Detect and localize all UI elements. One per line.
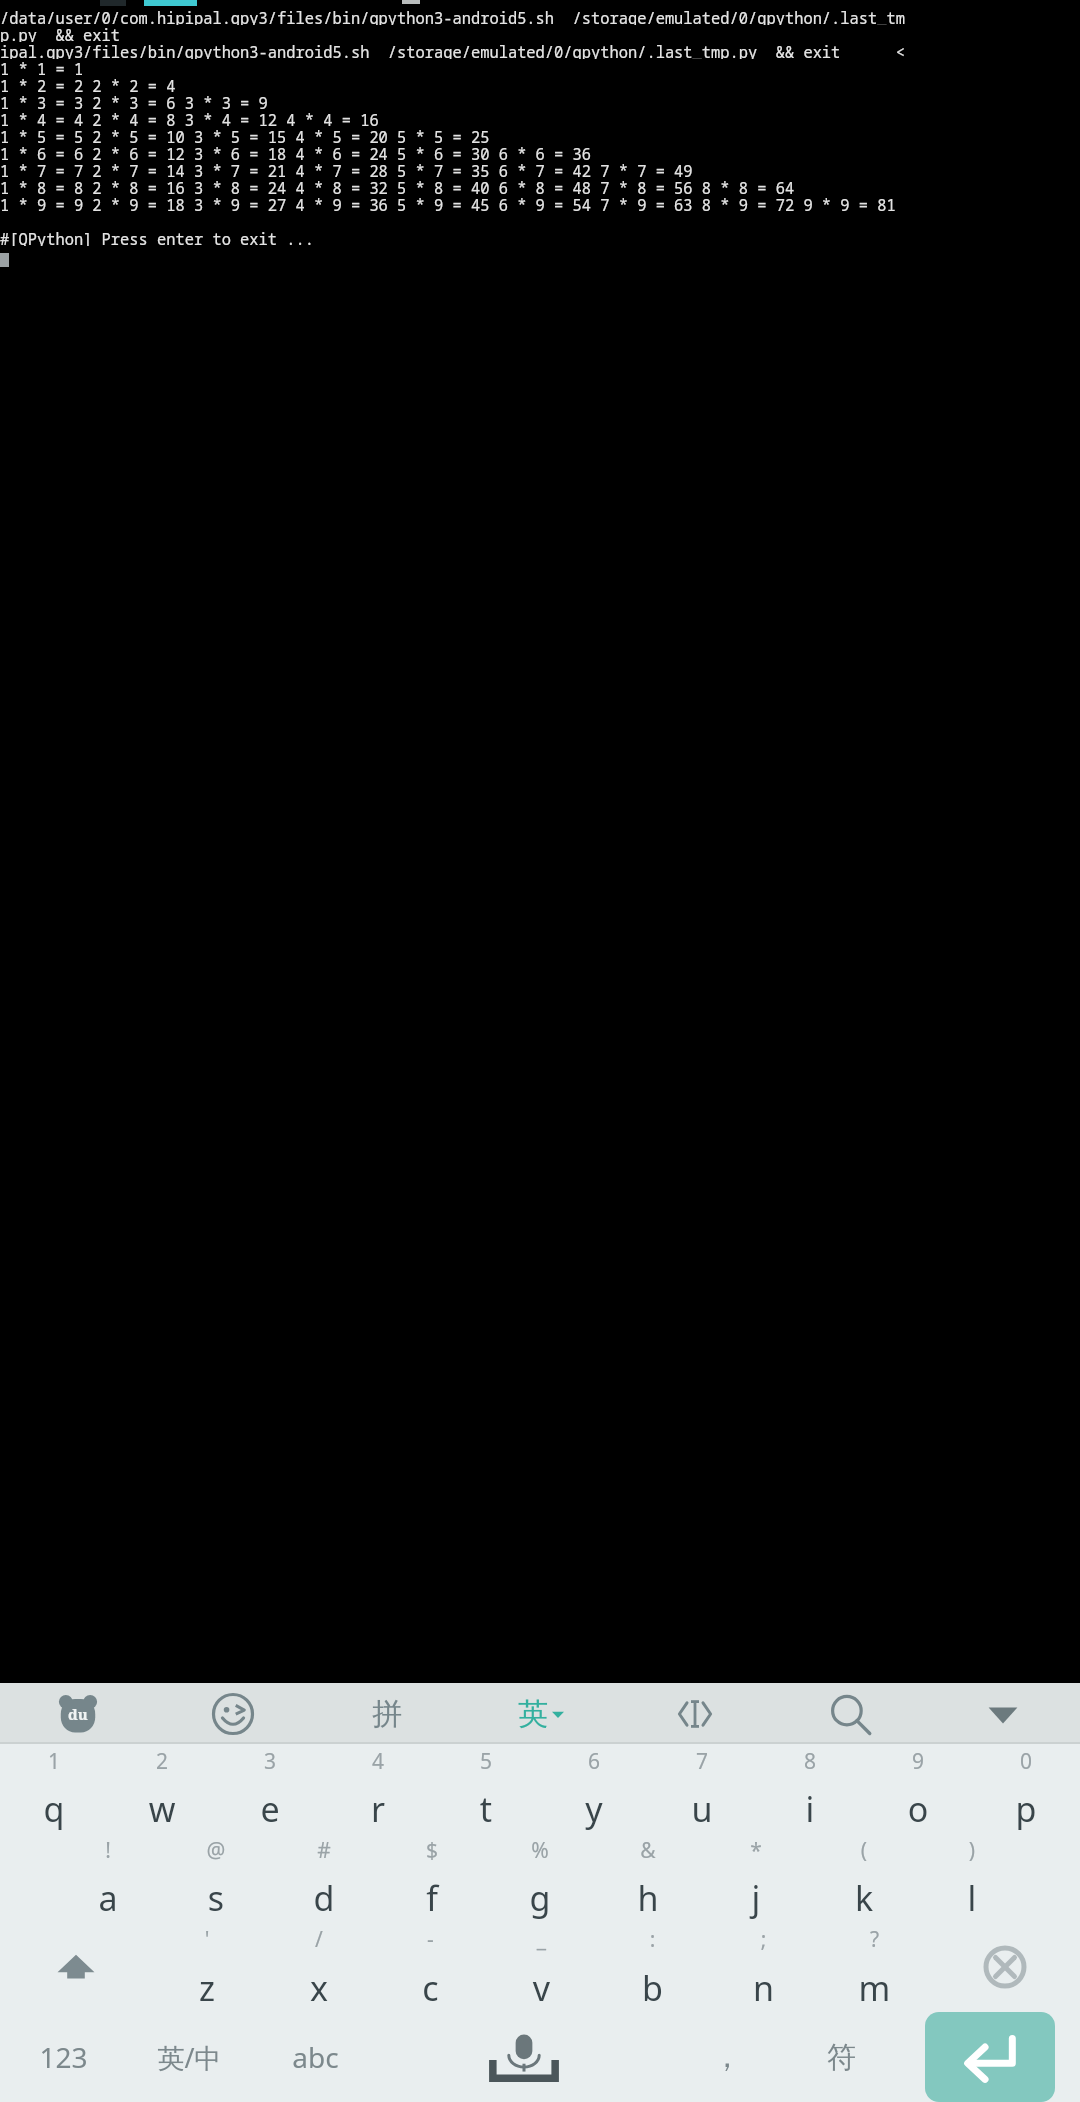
staticText: d bbox=[270, 1875, 378, 1921]
button[interactable]: Enter bbox=[925, 2012, 1055, 2102]
button[interactable]: Backspace bbox=[930, 1922, 1080, 2012]
staticText: p.py && exit bbox=[0, 25, 1080, 42]
button[interactable]: ' bbox=[151, 1922, 263, 2012]
staticText: 1 bbox=[0, 1747, 108, 1776]
staticText: 123 bbox=[39, 2038, 88, 2076]
button[interactable]: % bbox=[486, 1833, 594, 1922]
button[interactable]: 符 bbox=[784, 2012, 899, 2102]
staticText: u bbox=[648, 1786, 756, 1832]
staticText: * bbox=[702, 1836, 810, 1865]
button[interactable]: 9 bbox=[864, 1744, 972, 1833]
staticText: : bbox=[597, 1925, 708, 1954]
staticText: n bbox=[708, 1965, 819, 2011]
staticText: 0 bbox=[972, 1747, 1080, 1776]
staticText: f bbox=[378, 1875, 486, 1921]
staticText: c bbox=[375, 1965, 486, 2011]
button[interactable]: 英/中 bbox=[126, 2012, 252, 2102]
staticText: 9 bbox=[864, 1747, 972, 1776]
staticText: x bbox=[263, 1965, 375, 2011]
button[interactable]: 1 bbox=[0, 1744, 108, 1833]
button[interactable]: 8 bbox=[756, 1744, 864, 1833]
button[interactable]: ; bbox=[708, 1922, 819, 2012]
staticText: ; bbox=[708, 1925, 819, 1954]
staticText: i bbox=[756, 1786, 864, 1832]
button[interactable]: 3 bbox=[216, 1744, 324, 1833]
staticText: - bbox=[375, 1925, 486, 1954]
staticText: o bbox=[864, 1786, 972, 1832]
staticText: 1 * 1 = 1 bbox=[0, 59, 1080, 76]
button[interactable]: Move cursor bbox=[618, 1683, 772, 1744]
staticText: z bbox=[151, 1965, 263, 2011]
button[interactable]: Baidu input method bbox=[0, 1683, 155, 1744]
button[interactable]: - bbox=[375, 1922, 486, 2012]
button[interactable]: 2 bbox=[108, 1744, 216, 1833]
staticText: 4 bbox=[324, 1747, 432, 1776]
staticText: j bbox=[702, 1875, 810, 1921]
staticText: a bbox=[54, 1875, 162, 1921]
button[interactable]: 5 bbox=[432, 1744, 540, 1833]
button[interactable]: Emoji bbox=[155, 1683, 310, 1744]
button[interactable]: 4 bbox=[324, 1744, 432, 1833]
staticText: 5 bbox=[432, 1747, 540, 1776]
staticText: _ bbox=[486, 1925, 597, 1954]
button[interactable]: 7 bbox=[648, 1744, 756, 1833]
staticText: 1 * 7 = 7 2 * 7 = 14 3 * 7 = 21 4 * 7 = … bbox=[0, 161, 1080, 178]
staticText: k bbox=[810, 1875, 918, 1921]
staticText: l bbox=[918, 1875, 1026, 1921]
button[interactable]: Shift bbox=[0, 1922, 151, 2012]
button[interactable]: 6 bbox=[540, 1744, 648, 1833]
button[interactable]: # bbox=[270, 1833, 378, 1922]
staticText: ' bbox=[151, 1925, 263, 1954]
staticText: # bbox=[270, 1836, 378, 1865]
button[interactable]: ? bbox=[819, 1922, 930, 2012]
staticText: 1 * 8 = 8 2 * 8 = 16 3 * 8 = 24 4 * 8 = … bbox=[0, 178, 1080, 195]
staticText: 符 bbox=[827, 2039, 856, 2076]
staticText: h bbox=[594, 1875, 702, 1921]
staticText: w bbox=[108, 1786, 216, 1832]
staticText: /data/user/0/com.hipipal.qpy3/files/bin/… bbox=[0, 8, 1080, 25]
staticText: t bbox=[432, 1786, 540, 1832]
button[interactable]: : bbox=[597, 1922, 708, 2012]
staticText: 3 bbox=[216, 1747, 324, 1776]
button[interactable]: Hide keyboard bbox=[926, 1683, 1080, 1744]
staticText: 1 * 5 = 5 2 * 5 = 10 3 * 5 = 15 4 * 5 = … bbox=[0, 127, 1080, 144]
button[interactable]: ， bbox=[669, 2012, 784, 2102]
staticText: ) bbox=[918, 1836, 1026, 1865]
staticText: & bbox=[594, 1836, 702, 1865]
staticText: @ bbox=[162, 1836, 270, 1865]
staticText: 1 * 9 = 9 2 * 9 = 18 3 * 9 = 27 4 * 9 = … bbox=[0, 195, 1080, 212]
button[interactable]: $ bbox=[378, 1833, 486, 1922]
staticText: m bbox=[819, 1965, 930, 2011]
button[interactable]: Space / voice input bbox=[379, 2012, 669, 2102]
button[interactable]: / bbox=[263, 1922, 375, 2012]
staticText: y bbox=[540, 1786, 648, 1832]
staticText: r bbox=[324, 1786, 432, 1832]
staticText: ( bbox=[810, 1836, 918, 1865]
button[interactable]: _ bbox=[486, 1922, 597, 2012]
staticText: p bbox=[972, 1786, 1080, 1832]
button[interactable]: & bbox=[594, 1833, 702, 1922]
staticText: / bbox=[263, 1925, 375, 1954]
staticText: 1 * 2 = 2 2 * 2 = 4 bbox=[0, 76, 1080, 93]
button[interactable]: ( bbox=[810, 1833, 918, 1922]
staticText: ipal.qpy3/files/bin/qpython3-android5.sh… bbox=[0, 42, 1080, 59]
button[interactable]: English input bbox=[464, 1683, 618, 1744]
button[interactable]: 0 bbox=[972, 1744, 1080, 1833]
button[interactable]: ) bbox=[918, 1833, 1026, 1922]
staticText: 8 bbox=[756, 1747, 864, 1776]
staticText: #[QPython] Press enter to exit ... bbox=[0, 229, 1080, 246]
button[interactable]: ! bbox=[54, 1833, 162, 1922]
button[interactable]: 123 bbox=[0, 2012, 126, 2102]
staticText: % bbox=[486, 1836, 594, 1865]
button[interactable]: * bbox=[702, 1833, 810, 1922]
staticText: 2 bbox=[108, 1747, 216, 1776]
button[interactable]: Pinyin input bbox=[310, 1683, 464, 1744]
button[interactable]: @ bbox=[162, 1833, 270, 1922]
staticText: ! bbox=[54, 1836, 162, 1865]
button[interactable]: abc bbox=[252, 2012, 379, 2102]
button[interactable]: Search bbox=[772, 1683, 926, 1744]
staticText: g bbox=[486, 1875, 594, 1921]
staticText: 6 bbox=[540, 1747, 648, 1776]
staticText: q bbox=[0, 1786, 108, 1832]
